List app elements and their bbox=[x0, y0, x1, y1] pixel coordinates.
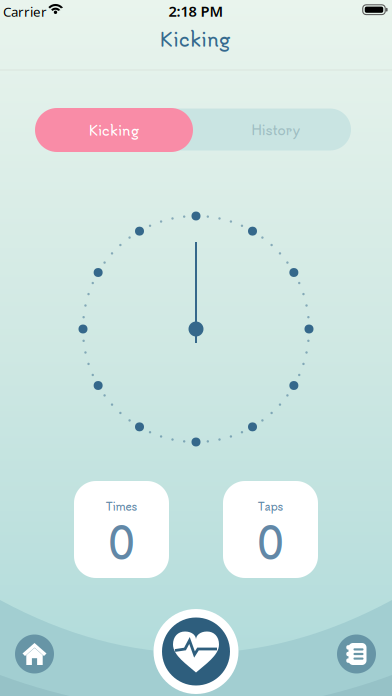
staticText: 0 bbox=[257, 510, 284, 571]
button[interactable]: Record kick bbox=[153, 609, 238, 694]
staticText: Taps bbox=[257, 498, 283, 514]
staticText: Kicking bbox=[160, 25, 230, 52]
staticText: Carrier bbox=[3, 3, 47, 20]
staticText: Times bbox=[105, 498, 137, 514]
button[interactable]: History bbox=[197, 108, 355, 150]
button[interactable]: History log bbox=[337, 634, 376, 673]
staticText: History bbox=[251, 120, 300, 139]
staticText: 0 bbox=[108, 510, 135, 571]
staticText: Kicking bbox=[89, 120, 139, 140]
button[interactable]: Kicking bbox=[35, 108, 193, 152]
button[interactable]: Home bbox=[15, 634, 54, 673]
staticText: 2:18 PM bbox=[168, 1, 223, 21]
